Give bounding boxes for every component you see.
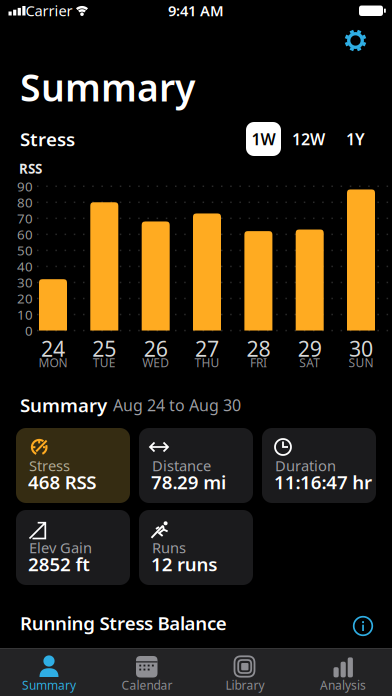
staticText: 11:16:47 hr [274, 470, 372, 494]
button[interactable]: Stress [16, 428, 130, 503]
staticText: 1Y [346, 128, 365, 150]
staticText: 24 [41, 334, 65, 363]
button[interactable]: Elev Gain [16, 510, 130, 585]
staticText: 80 [17, 193, 33, 211]
staticText: 90 [17, 177, 33, 195]
staticText: 1W [251, 128, 275, 150]
staticText: Distance [152, 456, 211, 475]
staticText: 12W [292, 128, 325, 150]
button[interactable]: 12W [288, 122, 328, 156]
staticText: 30 [349, 334, 373, 363]
staticText: 29 [298, 334, 322, 363]
staticText: Runs [152, 538, 186, 557]
staticText: FRI [250, 354, 267, 370]
staticText: Aug 24 to Aug 30 [113, 394, 241, 416]
staticText: Elev Gain [29, 538, 92, 557]
staticText: TUE [93, 354, 116, 370]
staticText: SUN [348, 354, 373, 370]
button[interactable] [352, 615, 374, 637]
button[interactable]: Calendar [119, 652, 175, 692]
staticText: 40 [17, 257, 33, 275]
staticText: THU [194, 354, 219, 370]
staticText: Stress [29, 456, 70, 475]
staticText: 25 [92, 334, 116, 363]
staticText: 9:41 AM [168, 1, 224, 20]
staticText: 12 runs [151, 552, 217, 576]
staticText: RSS [19, 160, 42, 177]
staticText: 10 [17, 306, 33, 323]
staticText: 468 RSS [28, 470, 96, 494]
button[interactable]: 1Y [340, 122, 370, 156]
button[interactable]: Summary [21, 652, 77, 692]
staticText: 50 [17, 241, 33, 259]
staticText: Stress [20, 127, 75, 151]
staticText: SAT [299, 354, 320, 370]
button[interactable]: Library [217, 652, 273, 692]
staticText: Summary [22, 677, 76, 693]
staticText: Duration [275, 456, 336, 475]
button[interactable] [343, 28, 367, 52]
staticText: 0 [25, 322, 33, 339]
staticText: 26 [144, 334, 168, 363]
staticText: Calendar [121, 677, 172, 693]
staticText: Library [225, 677, 264, 693]
staticText: 60 [17, 225, 33, 243]
staticText: 28 [246, 334, 270, 363]
button[interactable]: Runs [139, 510, 253, 585]
button[interactable]: Duration [262, 428, 376, 503]
button[interactable]: Analysis [315, 652, 371, 692]
staticText: WED [142, 354, 169, 370]
staticText: Carrier [25, 1, 72, 20]
staticText: 30 [17, 274, 33, 291]
staticText: Summary [20, 393, 107, 417]
staticText: 78.29 mi [151, 470, 226, 494]
staticText: 70 [17, 209, 33, 227]
staticText: 2852 ft [28, 552, 90, 576]
button[interactable]: Distance [139, 428, 253, 503]
staticText: Analysis [320, 677, 366, 693]
staticText: Running Stress Balance [20, 611, 227, 635]
button[interactable]: 1W [246, 122, 281, 156]
staticText: 20 [17, 290, 33, 307]
staticText: 27 [195, 334, 219, 363]
staticText: MON [38, 354, 67, 370]
staticText: Summary [20, 62, 195, 112]
